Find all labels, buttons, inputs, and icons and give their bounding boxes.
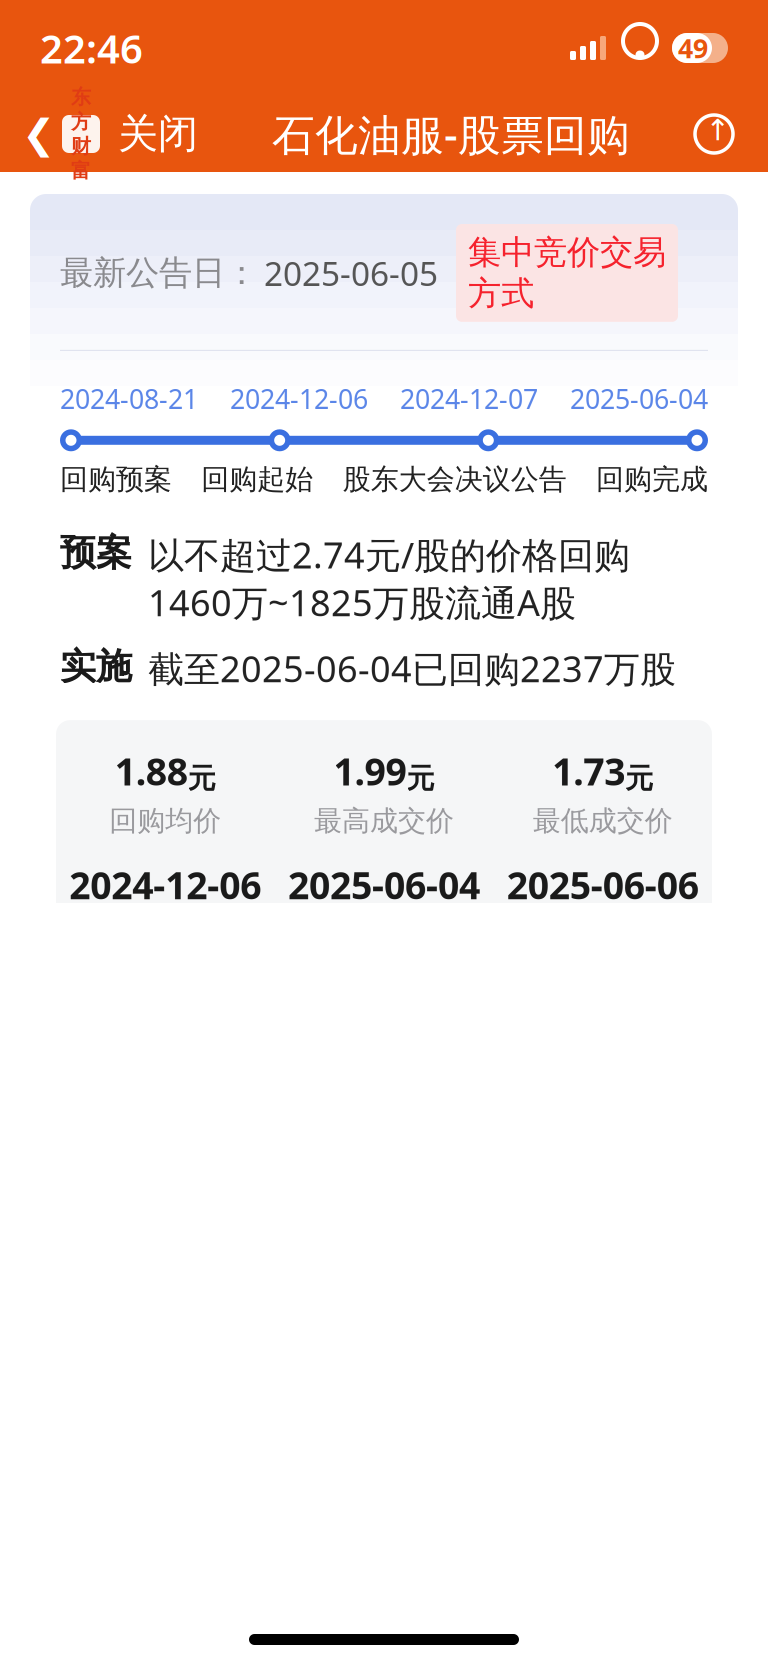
staticText: 2025-06-05 [264, 251, 438, 295]
button[interactable]: Refresh [686, 106, 742, 162]
staticText: 1.73 [552, 746, 625, 796]
staticText: 元 [406, 761, 434, 796]
staticText: 元 [625, 761, 653, 796]
staticText: 以不超过2.74元/股的价格回购1460万~1825万股流通A股 [148, 531, 630, 626]
staticText: 东方 [71, 85, 91, 134]
staticText: 2025-06-04 [288, 860, 480, 910]
staticText: 集中竞价交易方式 [468, 232, 666, 314]
staticText: 最低成交价 [533, 804, 673, 838]
staticText: 元 [188, 761, 216, 796]
staticText: ❮ [22, 111, 56, 157]
staticText: 最高成交价 [314, 1600, 454, 1635]
staticText: 预案 [60, 531, 132, 575]
staticText: 1.99 [333, 746, 406, 796]
staticText: 回购完成 [596, 462, 708, 497]
button[interactable]: 关闭 [100, 99, 216, 168]
staticText: 最新公告日： [60, 252, 258, 293]
staticText: 22:46 [40, 21, 143, 74]
staticText: 49 [678, 30, 708, 66]
staticText: 股东大会决议公告 [343, 462, 567, 497]
staticText: ↑ [705, 113, 730, 147]
staticText: 1.88 [115, 746, 188, 796]
staticText: 实施 [60, 644, 132, 688]
staticText: 回购预案 [60, 462, 172, 497]
staticText: 财富 [71, 134, 91, 183]
staticText: 2025-06-06 [507, 860, 699, 910]
staticText: 回购起始 [201, 462, 313, 497]
staticText: 2025-06-04 [570, 381, 708, 416]
staticText: 截至2025-06-04已回购2237万股 [148, 644, 676, 692]
staticText: 关闭 [118, 109, 198, 158]
staticText: 2024-08-21 [60, 381, 198, 416]
staticText: 回购均价 [109, 804, 221, 838]
staticText: 石化油服-股票回购 [272, 106, 630, 162]
staticText: 2024-12-06 [69, 860, 261, 910]
staticText: 2024-12-07 [400, 381, 538, 416]
staticText: 2024-12-06 [230, 381, 368, 416]
button[interactable]: Back [0, 101, 100, 167]
staticText: 最高成交价 [314, 804, 454, 838]
